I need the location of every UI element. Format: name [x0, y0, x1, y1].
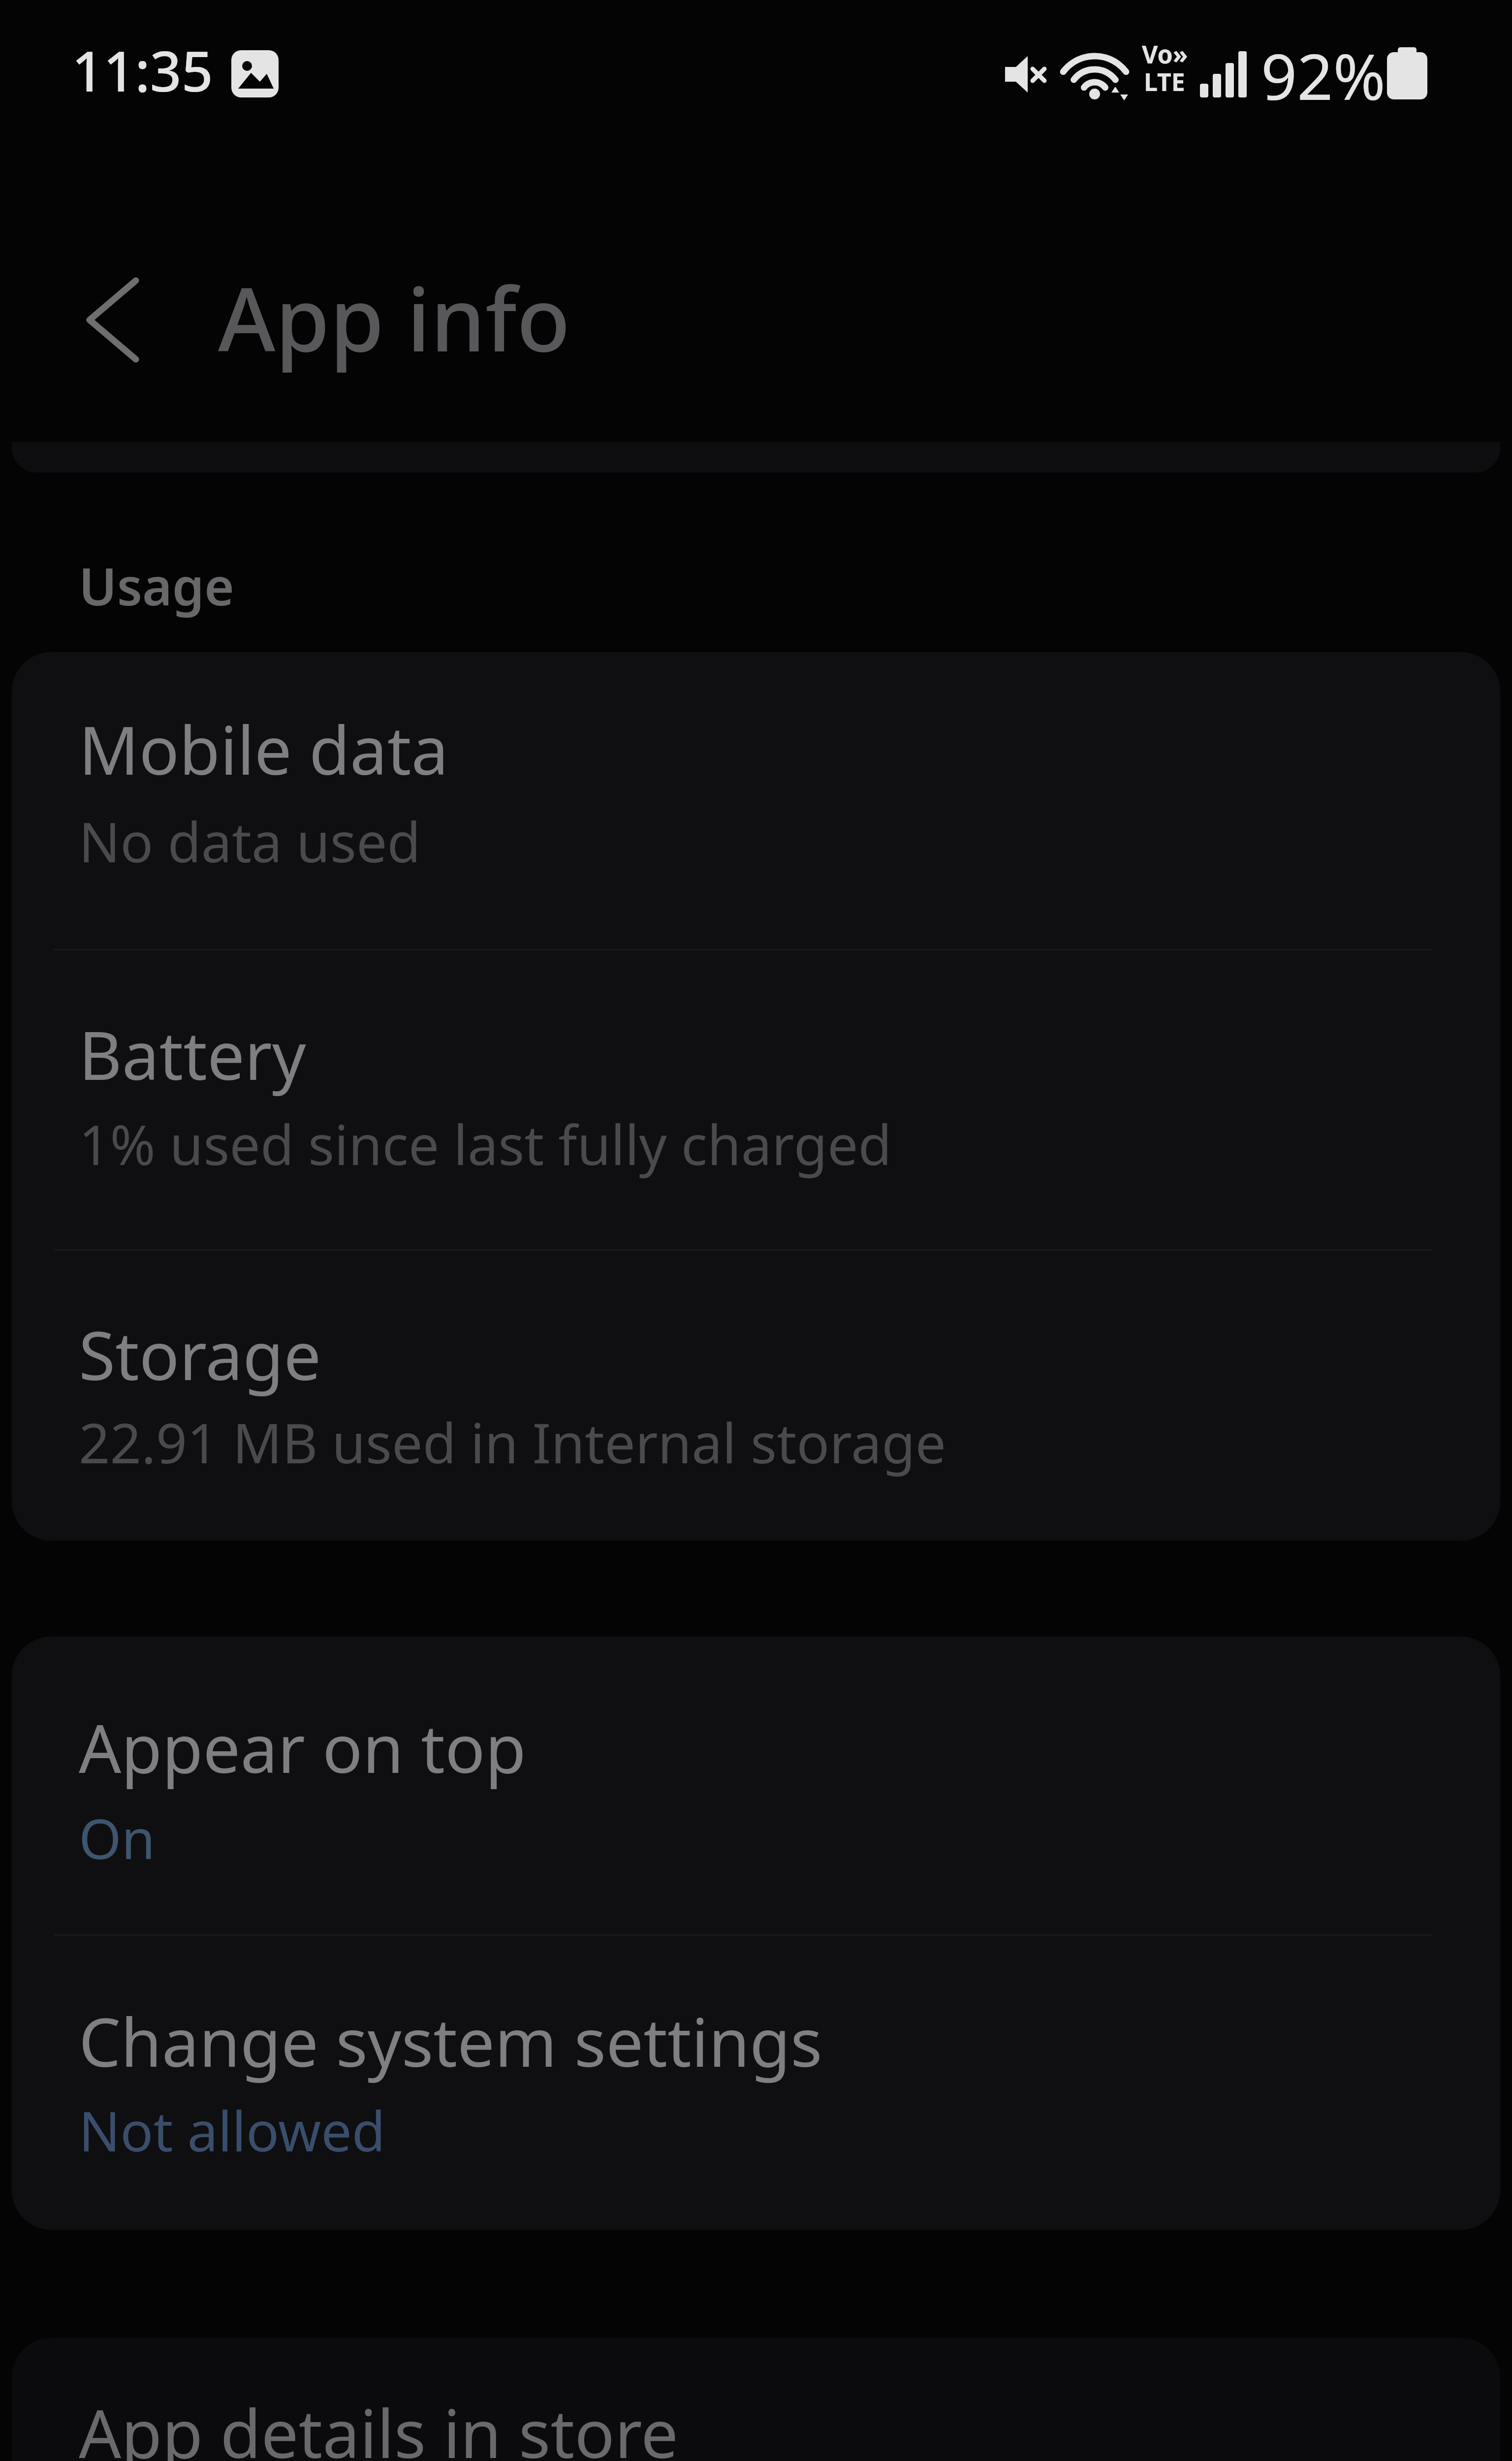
staticText: Storage — [79, 1309, 321, 1400]
staticText: Usage — [79, 551, 234, 621]
staticText: Change system settings — [79, 1996, 822, 2086]
button[interactable] — [12, 2338, 1500, 2461]
staticText: On — [79, 1800, 156, 1875]
staticText: App details in store — [79, 2387, 679, 2461]
staticText: 22.91 MB used in Internal storage — [79, 1405, 946, 1479]
staticText: LTE — [1144, 65, 1185, 98]
staticText: App info — [218, 258, 570, 377]
staticText: Not allowed — [79, 2093, 386, 2167]
staticText: Battery — [79, 1009, 306, 1100]
staticText: Appear on top — [79, 1702, 526, 1793]
staticText: Vo» — [1142, 37, 1188, 71]
button[interactable] — [12, 1250, 1500, 1541]
button[interactable] — [12, 950, 1500, 1250]
button[interactable] — [12, 1637, 1500, 1935]
button[interactable] — [12, 1935, 1500, 2230]
staticText: Mobile data — [79, 704, 449, 794]
staticText: No data used — [79, 804, 421, 878]
staticText: 1% used since last fully charged — [79, 1106, 892, 1181]
staticText: 11:35 — [72, 32, 213, 108]
button[interactable] — [59, 266, 167, 374]
staticText: 92% — [1261, 32, 1386, 118]
button[interactable] — [12, 652, 1500, 950]
